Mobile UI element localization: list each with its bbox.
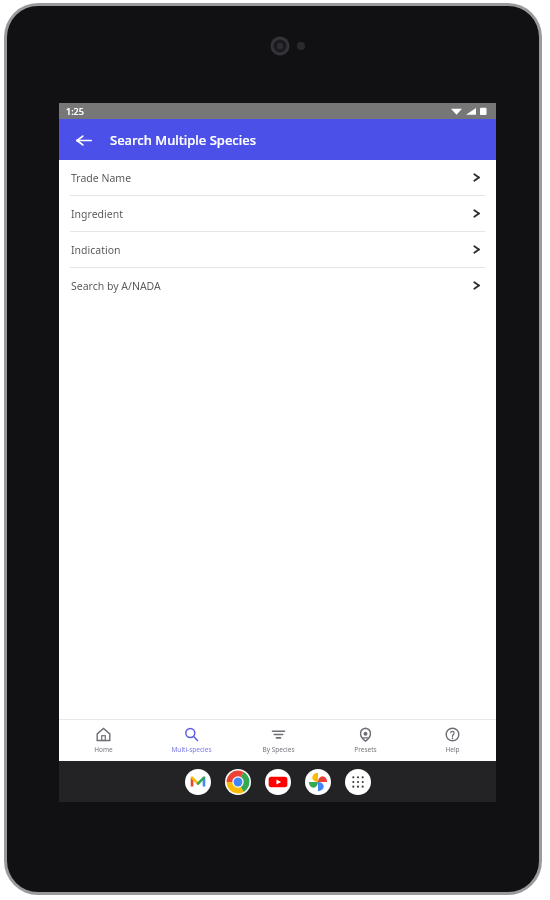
button[interactable]: Back — [67, 124, 99, 156]
button[interactable]: Ingredient — [59, 196, 496, 231]
staticText: 1:25 — [66, 105, 84, 117]
button[interactable]: Chrome — [225, 769, 251, 795]
button[interactable]: Indication — [59, 232, 496, 267]
button[interactable]: Trade Name — [59, 160, 496, 195]
button[interactable]: Presets — [322, 720, 409, 761]
button[interactable]: Help — [409, 720, 496, 761]
staticText: Ingredient — [71, 207, 471, 221]
staticText: Trade Name — [71, 171, 471, 185]
staticText: Help — [445, 745, 460, 754]
staticText: Search Multiple Species — [110, 131, 257, 149]
button[interactable]: Search by A/NADA — [59, 268, 496, 303]
staticText: Indication — [71, 243, 471, 257]
button[interactable]: YouTube — [265, 769, 291, 795]
staticText: Presets — [354, 745, 377, 754]
button[interactable]: Apps — [345, 769, 371, 795]
button[interactable]: Multi-species — [147, 720, 235, 761]
staticText: Search by A/NADA — [71, 279, 471, 293]
staticText: Multi-species — [171, 745, 212, 754]
button[interactable]: Photos — [305, 769, 331, 795]
staticText: By Species — [262, 745, 295, 754]
button[interactable]: Home — [59, 720, 147, 761]
button[interactable]: Gmail — [185, 769, 211, 795]
staticText: Home — [94, 745, 113, 754]
button[interactable]: By Species — [235, 720, 322, 761]
